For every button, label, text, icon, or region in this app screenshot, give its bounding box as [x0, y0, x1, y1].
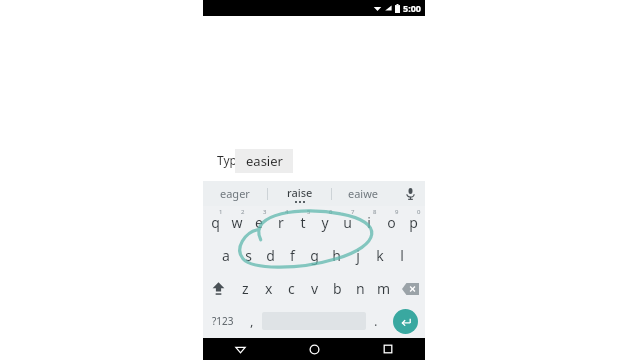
button[interactable]: b — [326, 272, 349, 305]
button[interactable]: Shift — [203, 272, 234, 305]
staticText: q — [211, 213, 220, 232]
button[interactable]: k — [369, 239, 391, 272]
button[interactable]: f — [281, 239, 303, 272]
button[interactable]: i — [358, 206, 380, 239]
staticText: 3 — [263, 208, 267, 216]
button[interactable]: Backspace — [395, 272, 425, 305]
button[interactable]: g — [303, 239, 325, 272]
button[interactable]: r — [270, 206, 292, 239]
staticText: h — [332, 246, 341, 265]
button[interactable]: o — [380, 206, 402, 239]
button[interactable]: s — [237, 239, 259, 272]
staticText: p — [409, 213, 418, 232]
button[interactable]: j — [347, 239, 369, 272]
staticText: c — [288, 279, 295, 298]
staticText: ?123 — [212, 314, 234, 328]
staticText: 2 — [241, 208, 245, 216]
button[interactable]: w — [226, 206, 248, 239]
staticText: eaiwe — [348, 186, 379, 201]
staticText: 7 — [351, 208, 355, 216]
button[interactable]: ?123 — [203, 305, 242, 337]
staticText: l — [400, 246, 404, 265]
staticText: 9 — [395, 208, 399, 216]
button[interactable]: a — [215, 239, 237, 272]
staticText: v — [311, 279, 319, 298]
staticText: b — [333, 279, 342, 298]
button[interactable]: . — [366, 305, 386, 337]
button[interactable]: l — [391, 239, 413, 272]
button[interactable]: raise — [268, 181, 331, 206]
button[interactable]: Recents — [351, 338, 425, 360]
button[interactable]: Enter — [393, 309, 418, 334]
button[interactable]: Back — [203, 338, 277, 360]
button[interactable]: e — [248, 206, 270, 239]
staticText: m — [377, 279, 391, 298]
button[interactable]: v — [303, 272, 326, 305]
button[interactable]: q — [204, 206, 226, 239]
staticText: g — [310, 246, 319, 265]
staticText: z — [242, 279, 249, 298]
button[interactable]: m — [372, 272, 395, 305]
button[interactable]: u — [336, 206, 358, 239]
staticText: easier — [246, 152, 283, 170]
staticText: 0 — [417, 208, 421, 216]
button[interactable]: t — [292, 206, 314, 239]
staticText: 4 — [285, 208, 289, 216]
staticText: j — [356, 246, 360, 265]
staticText: 6 — [329, 208, 333, 216]
staticText: x — [265, 279, 273, 298]
button[interactable]: eaiwe — [332, 181, 395, 206]
staticText: s — [245, 246, 252, 265]
button[interactable]: c — [280, 272, 303, 305]
staticText: y — [321, 213, 329, 232]
staticText: 5:00 — [403, 2, 421, 14]
staticText: a — [222, 246, 230, 265]
staticText: raise — [287, 185, 313, 200]
staticText: e — [255, 213, 263, 232]
staticText: , — [250, 312, 254, 330]
staticText: 1 — [219, 208, 223, 216]
staticText: 8 — [373, 208, 377, 216]
button[interactable]: Home — [277, 338, 351, 360]
staticText: o — [387, 213, 396, 232]
staticText: f — [290, 246, 295, 265]
staticText: eager — [220, 186, 250, 201]
staticText: d — [266, 246, 275, 265]
staticText: i — [367, 213, 371, 232]
button[interactable]: eager — [203, 181, 267, 206]
button[interactable]: , — [242, 305, 262, 337]
staticText: . — [374, 312, 378, 330]
staticText: 5 — [307, 208, 311, 216]
button[interactable]: z — [234, 272, 257, 305]
button[interactable]: p — [402, 206, 424, 239]
button[interactable]: d — [259, 239, 281, 272]
staticText: Typing is — [217, 152, 267, 168]
staticText: u — [343, 213, 352, 232]
button[interactable]: x — [257, 272, 280, 305]
button[interactable]: Voice input — [395, 181, 425, 206]
staticText: n — [356, 279, 365, 298]
staticText: w — [231, 213, 243, 232]
staticText: t — [300, 213, 306, 232]
button[interactable]: y — [314, 206, 336, 239]
button[interactable]: n — [349, 272, 372, 305]
button[interactable]: h — [325, 239, 347, 272]
staticText: r — [278, 213, 284, 232]
staticText: k — [376, 246, 384, 265]
